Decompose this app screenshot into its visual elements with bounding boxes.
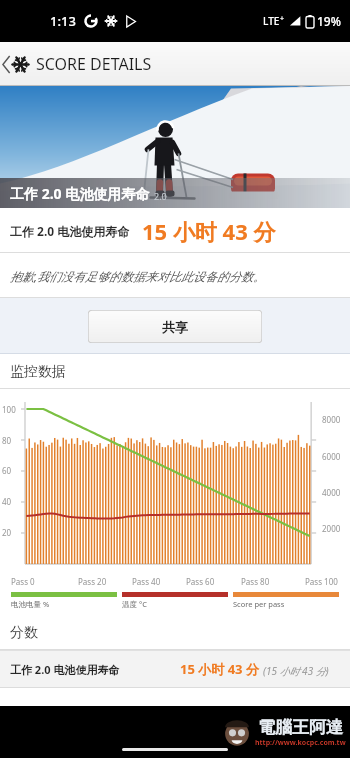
staticText: 温度 °C <box>122 599 147 609</box>
staticText: 1:13 <box>50 12 76 30</box>
staticText: 工作 2.0 电池使用寿命 <box>10 184 150 203</box>
staticText: 分数 <box>10 624 38 642</box>
staticText: 19% <box>317 13 341 29</box>
staticText: 2.0 <box>154 190 167 202</box>
staticText: 抱歉,我们没有足够的数据来对比此设备的分数。 <box>10 268 266 284</box>
button[interactable]: Back <box>0 42 162 86</box>
staticText: 共享 <box>162 319 188 335</box>
staticText: 8000 <box>322 414 341 425</box>
staticText: 工作 2.0 电池使用寿命 <box>10 223 130 239</box>
staticText: 2000 <box>322 523 341 534</box>
staticText: LTE <box>263 14 280 28</box>
staticText: Pass 20 <box>78 576 107 587</box>
staticText: 6000 <box>322 451 341 462</box>
staticText: (15 小时 43 分) <box>263 664 329 678</box>
staticText: SCORE DETAILS <box>36 53 152 75</box>
other: Back <box>2 56 11 73</box>
staticText: Pass 40 <box>132 576 161 587</box>
staticText: Score per pass <box>233 599 285 609</box>
staticText: Pass 100 <box>305 576 338 587</box>
staticText: 100 <box>2 404 16 415</box>
staticText: 80 <box>2 435 12 446</box>
staticText: 40 <box>2 496 12 507</box>
staticText: 电池电量 % <box>11 599 50 609</box>
staticText: 60 <box>2 465 12 476</box>
staticText: 4000 <box>322 487 341 498</box>
staticText: Pass 60 <box>186 576 215 587</box>
staticText: 電腦王阿達 <box>258 717 343 738</box>
button[interactable]: 共享 <box>88 310 262 343</box>
staticText: http://www.kocpc.com.tw <box>255 738 346 748</box>
staticText: Pass 0 <box>11 576 35 587</box>
staticText: 监控数据 <box>10 363 66 381</box>
staticText: 15 小时 43 分 <box>180 660 259 678</box>
staticText: 15 小时 43 分 <box>142 216 276 246</box>
staticText: 工作 2.0 电池使用寿命 <box>10 662 120 677</box>
staticText: Pass 80 <box>241 576 270 587</box>
staticText: + <box>280 14 285 24</box>
staticText: 20 <box>2 527 12 538</box>
